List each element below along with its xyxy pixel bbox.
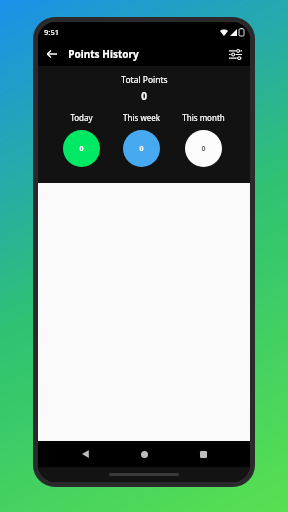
staticText: Total Points [121,74,168,86]
staticText: 0 [201,144,206,154]
staticText: Today [70,112,93,123]
button[interactable]: Back [41,43,63,65]
button[interactable]: Home [133,443,155,465]
button[interactable]: This month [180,112,227,167]
button[interactable]: This week [121,112,162,167]
button[interactable]: Recents [192,443,214,465]
button[interactable]: Today [61,112,102,167]
staticText: 0 [139,144,144,154]
button[interactable]: Back [75,443,97,465]
staticText: 0 [141,89,147,103]
staticText: Points History [68,47,139,61]
staticText: 0 [79,144,84,154]
staticText: This week [123,112,160,123]
button[interactable]: Filter [224,43,246,65]
staticText: This month [182,112,225,123]
staticText: 9:51 [44,27,59,37]
